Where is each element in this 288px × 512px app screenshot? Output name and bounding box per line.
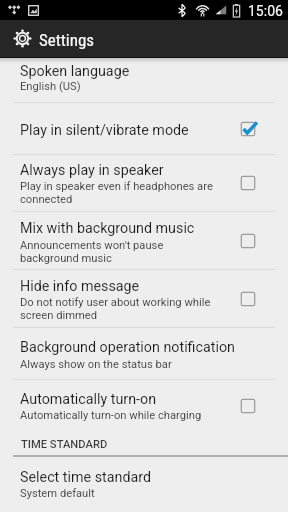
staticText: Always show on the status bar [20,358,260,371]
staticText: English (US) [20,80,260,93]
staticText: Select time standard [20,469,260,486]
staticText: Mix with background music [20,220,260,237]
other: Settings [13,29,32,48]
staticText: Settings [39,30,95,50]
staticText: TIME STANDARD [21,438,108,451]
button[interactable]: Background operation notification [0,328,288,379]
staticText: Announcements won't pause background mus… [20,239,260,265]
staticText: Do not notify user about working while s… [20,296,260,322]
other: Toggle [208,155,288,211]
staticText: Automatically turn-on [20,391,260,408]
button[interactable]: Play in silent/vibrate mode [0,103,288,154]
button[interactable]: Hide info message [0,270,288,327]
button[interactable]: Spoken language [0,58,288,102]
staticText: Automatically turn-on while charging [20,409,260,422]
other: Toggle [208,212,288,269]
button[interactable]: Mix with background music [0,212,288,269]
staticText: Play in speaker even if headphones are c… [20,180,260,206]
other: Toggle [208,380,288,431]
button[interactable]: Select time standard [0,457,288,512]
staticText: Spoken language [20,63,260,80]
button[interactable]: Always play in speaker [0,155,288,211]
staticText: Always play in speaker [20,162,260,179]
other: Toggle [208,103,288,154]
staticText: Play in silent/vibrate mode [20,122,260,139]
staticText: Background operation notification [20,339,260,356]
other: Toggle [208,270,288,327]
staticText: 15:06 [248,3,283,19]
staticText: Hide info message [20,278,260,295]
staticText: System default [20,487,260,500]
button[interactable]: Automatically turn-on [0,380,288,431]
